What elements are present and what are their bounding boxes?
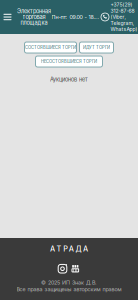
staticText: торговая: [22, 14, 45, 20]
button[interactable]: Меню: [3, 9, 11, 25]
staticText: 312-87-68: [110, 8, 134, 14]
staticText: СОСТОЯВШИЕСЯ ТОРГИ: [25, 45, 76, 50]
button[interactable]: Instagram: [58, 264, 67, 273]
staticText: Все права защищены авторским правом: [16, 286, 121, 293]
staticText: площадка: [20, 19, 47, 26]
staticText: (Viber,: [110, 14, 125, 20]
button[interactable]: Телефон: [101, 13, 109, 21]
staticText: +375(29): [110, 2, 132, 8]
button[interactable]: СОСТОЯВШИЕСЯ ТОРГИ: [24, 42, 76, 53]
staticText: © 2025 ИП Знак Д.В.: [41, 279, 97, 286]
staticText: Пн-пт: 09.00 - 18.00: [51, 14, 99, 20]
staticText: ИДУТ ТОРГИ: [83, 45, 110, 50]
button[interactable]: YouTube: [71, 264, 80, 273]
button[interactable]: +375(29): [110, 2, 138, 32]
button[interactable]: ИДУТ ТОРГИ: [79, 42, 113, 53]
staticText: Telegram,: [110, 20, 133, 26]
staticText: Аукционов нет: [50, 76, 88, 83]
staticText: Электронная: [17, 8, 51, 15]
staticText: WhatsApp): [110, 26, 137, 32]
staticText: АТРАДА: [50, 244, 88, 253]
button[interactable]: НЕСОСТОЯВШИЕСЯ ТОРГИ: [35, 56, 102, 67]
staticText: НЕСОСТОЯВШИЕСЯ ТОРГИ: [41, 59, 97, 64]
